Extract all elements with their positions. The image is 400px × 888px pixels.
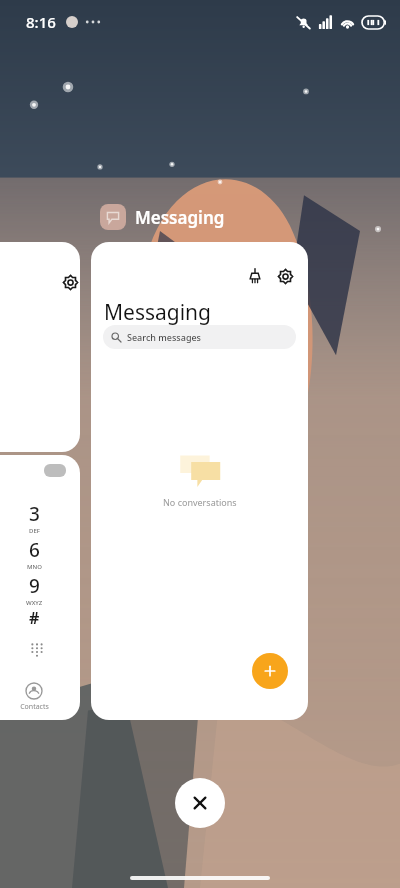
button[interactable]: Settings xyxy=(0,242,80,452)
button[interactable]: Clean up xyxy=(241,262,269,290)
staticText: DEF xyxy=(29,527,40,535)
button[interactable]: 3 xyxy=(14,501,54,535)
button[interactable]: Settings xyxy=(58,270,80,294)
button[interactable]: Search messages xyxy=(103,325,296,349)
staticText: WXYZ xyxy=(26,599,43,607)
button[interactable]: 6 xyxy=(14,537,54,571)
staticText: 9 xyxy=(29,573,40,599)
staticText: MNO xyxy=(27,563,42,571)
staticText: Search messages xyxy=(127,331,201,343)
button[interactable]: Close all xyxy=(175,778,225,828)
button[interactable]: Backspace xyxy=(44,464,66,477)
staticText: No conversations xyxy=(163,496,237,508)
staticText: Contacts xyxy=(20,702,49,712)
staticText: 3 xyxy=(29,501,40,527)
staticText: Messaging xyxy=(104,298,212,327)
button[interactable]: Settings xyxy=(271,262,299,290)
button[interactable]: Clean up xyxy=(91,242,308,720)
button[interactable]: 9 xyxy=(14,573,54,607)
button[interactable]: Backspace xyxy=(0,455,80,720)
staticText: 6 xyxy=(29,537,40,563)
button[interactable]: Contacts xyxy=(12,683,56,712)
staticText: Messaging xyxy=(135,206,225,229)
staticText: 8:16 xyxy=(26,12,56,32)
button[interactable]: New conversation xyxy=(252,653,288,689)
staticText: # xyxy=(29,607,40,629)
